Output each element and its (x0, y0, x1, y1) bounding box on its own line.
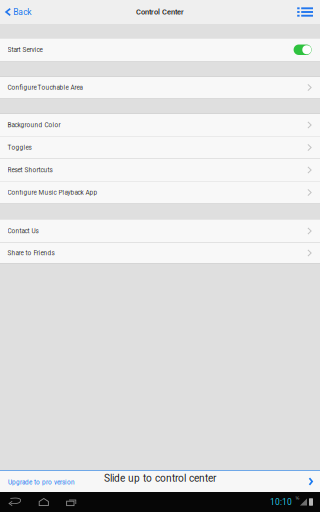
button[interactable]: Reset Shortcuts (0, 159, 320, 181)
button[interactable]: Home (39, 498, 49, 506)
button[interactable]: Open control center (302, 471, 320, 492)
button[interactable]: Back (0, 0, 36, 24)
staticText: Toggles (8, 144, 32, 151)
button[interactable]: Start Service (294, 44, 312, 55)
button[interactable]: Configure Music Playback App (0, 181, 320, 203)
button[interactable]: Share to Friends (0, 243, 320, 263)
staticText: Upgrade to pro version (8, 478, 75, 486)
button[interactable]: Back (8, 497, 22, 507)
staticText: Background Color (8, 121, 61, 129)
button[interactable]: Shortcut list (290, 0, 320, 24)
button[interactable]: Background Color (0, 114, 320, 136)
staticText: Start Service (8, 46, 43, 53)
button[interactable]: Contact Us (0, 219, 320, 242)
staticText: Configure Music Playback App (8, 189, 98, 196)
staticText: 16 (295, 495, 299, 500)
staticText: Control Center (136, 8, 184, 16)
staticText: Share to Friends (8, 249, 55, 257)
staticText: Configure Touchable Area (8, 84, 83, 91)
staticText: Slide up to control center (104, 472, 216, 484)
button[interactable]: Configure Touchable Area (0, 77, 320, 98)
button[interactable]: Recent apps (66, 498, 77, 506)
staticText: Reset Shortcuts (8, 166, 53, 174)
button[interactable]: Upgrade to pro version (0, 471, 82, 492)
staticText: 10:10 (270, 497, 292, 507)
button[interactable]: Toggles (0, 136, 320, 158)
staticText: Contact Us (8, 227, 39, 235)
staticText: Back (13, 7, 31, 17)
